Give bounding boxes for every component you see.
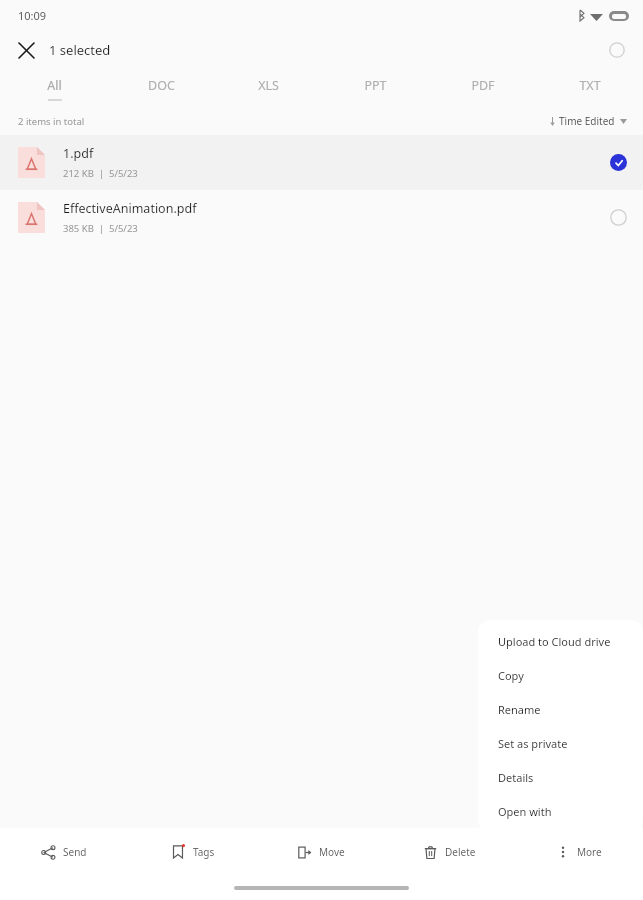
button[interactable]: Set as private bbox=[478, 726, 643, 760]
button[interactable]: EffectiveAnimation.pdf bbox=[0, 190, 643, 245]
button[interactable]: Delete bbox=[385, 828, 514, 876]
button[interactable]: PDF bbox=[429, 70, 536, 107]
staticText: PDF bbox=[471, 77, 495, 94]
staticText: Rename bbox=[498, 702, 541, 717]
staticText: Tags bbox=[193, 845, 215, 859]
staticText: Upload to Cloud drive bbox=[498, 634, 611, 649]
staticText: Move bbox=[319, 845, 345, 859]
staticText: Copy bbox=[498, 668, 524, 683]
other: Not selected bbox=[610, 209, 627, 226]
button[interactable]: 1.pdf bbox=[0, 135, 643, 190]
staticText: DOC bbox=[148, 77, 175, 94]
button[interactable]: Select all bbox=[603, 36, 631, 64]
staticText: TXT bbox=[579, 77, 601, 94]
button[interactable]: Details bbox=[478, 760, 643, 794]
staticText: 1.pdf bbox=[63, 145, 94, 162]
staticText: Send bbox=[63, 845, 87, 859]
button[interactable]: Copy bbox=[478, 658, 643, 692]
staticText: More bbox=[577, 845, 602, 859]
staticText: PPT bbox=[364, 77, 387, 94]
button[interactable]: Time Edited bbox=[547, 114, 629, 128]
staticText: All bbox=[47, 77, 62, 94]
staticText: XLS bbox=[258, 77, 279, 94]
staticText: Delete bbox=[445, 845, 476, 859]
staticText: Open with bbox=[498, 804, 552, 819]
button[interactable]: Upload to Cloud drive bbox=[478, 624, 643, 658]
button[interactable]: All bbox=[0, 70, 108, 107]
staticText: Set as private bbox=[498, 736, 568, 751]
button[interactable]: Send bbox=[0, 828, 128, 876]
button[interactable]: TXT bbox=[536, 70, 643, 107]
button[interactable]: XLS bbox=[215, 70, 322, 107]
staticText: 1 selected bbox=[49, 41, 111, 59]
button[interactable]: Close bbox=[10, 33, 119, 67]
staticText: Details bbox=[498, 770, 534, 785]
staticText: EffectiveAnimation.pdf bbox=[63, 200, 197, 217]
staticText: 212 KB | 5/5/23 bbox=[63, 167, 138, 180]
button[interactable]: Rename bbox=[478, 692, 643, 726]
other: Close bbox=[18, 42, 35, 59]
button[interactable]: Tags bbox=[128, 828, 256, 876]
button[interactable]: More bbox=[514, 828, 643, 876]
other: Selected bbox=[610, 154, 627, 171]
staticText: 10:09 bbox=[18, 8, 47, 23]
button[interactable]: PPT bbox=[322, 70, 429, 107]
staticText: 385 KB | 5/5/23 bbox=[63, 222, 138, 235]
button[interactable]: Open with bbox=[478, 794, 643, 828]
staticText: 2 items in total bbox=[18, 115, 85, 128]
button[interactable]: Move bbox=[256, 828, 385, 876]
staticText: Time Edited bbox=[559, 114, 615, 128]
button[interactable]: DOC bbox=[108, 70, 215, 107]
